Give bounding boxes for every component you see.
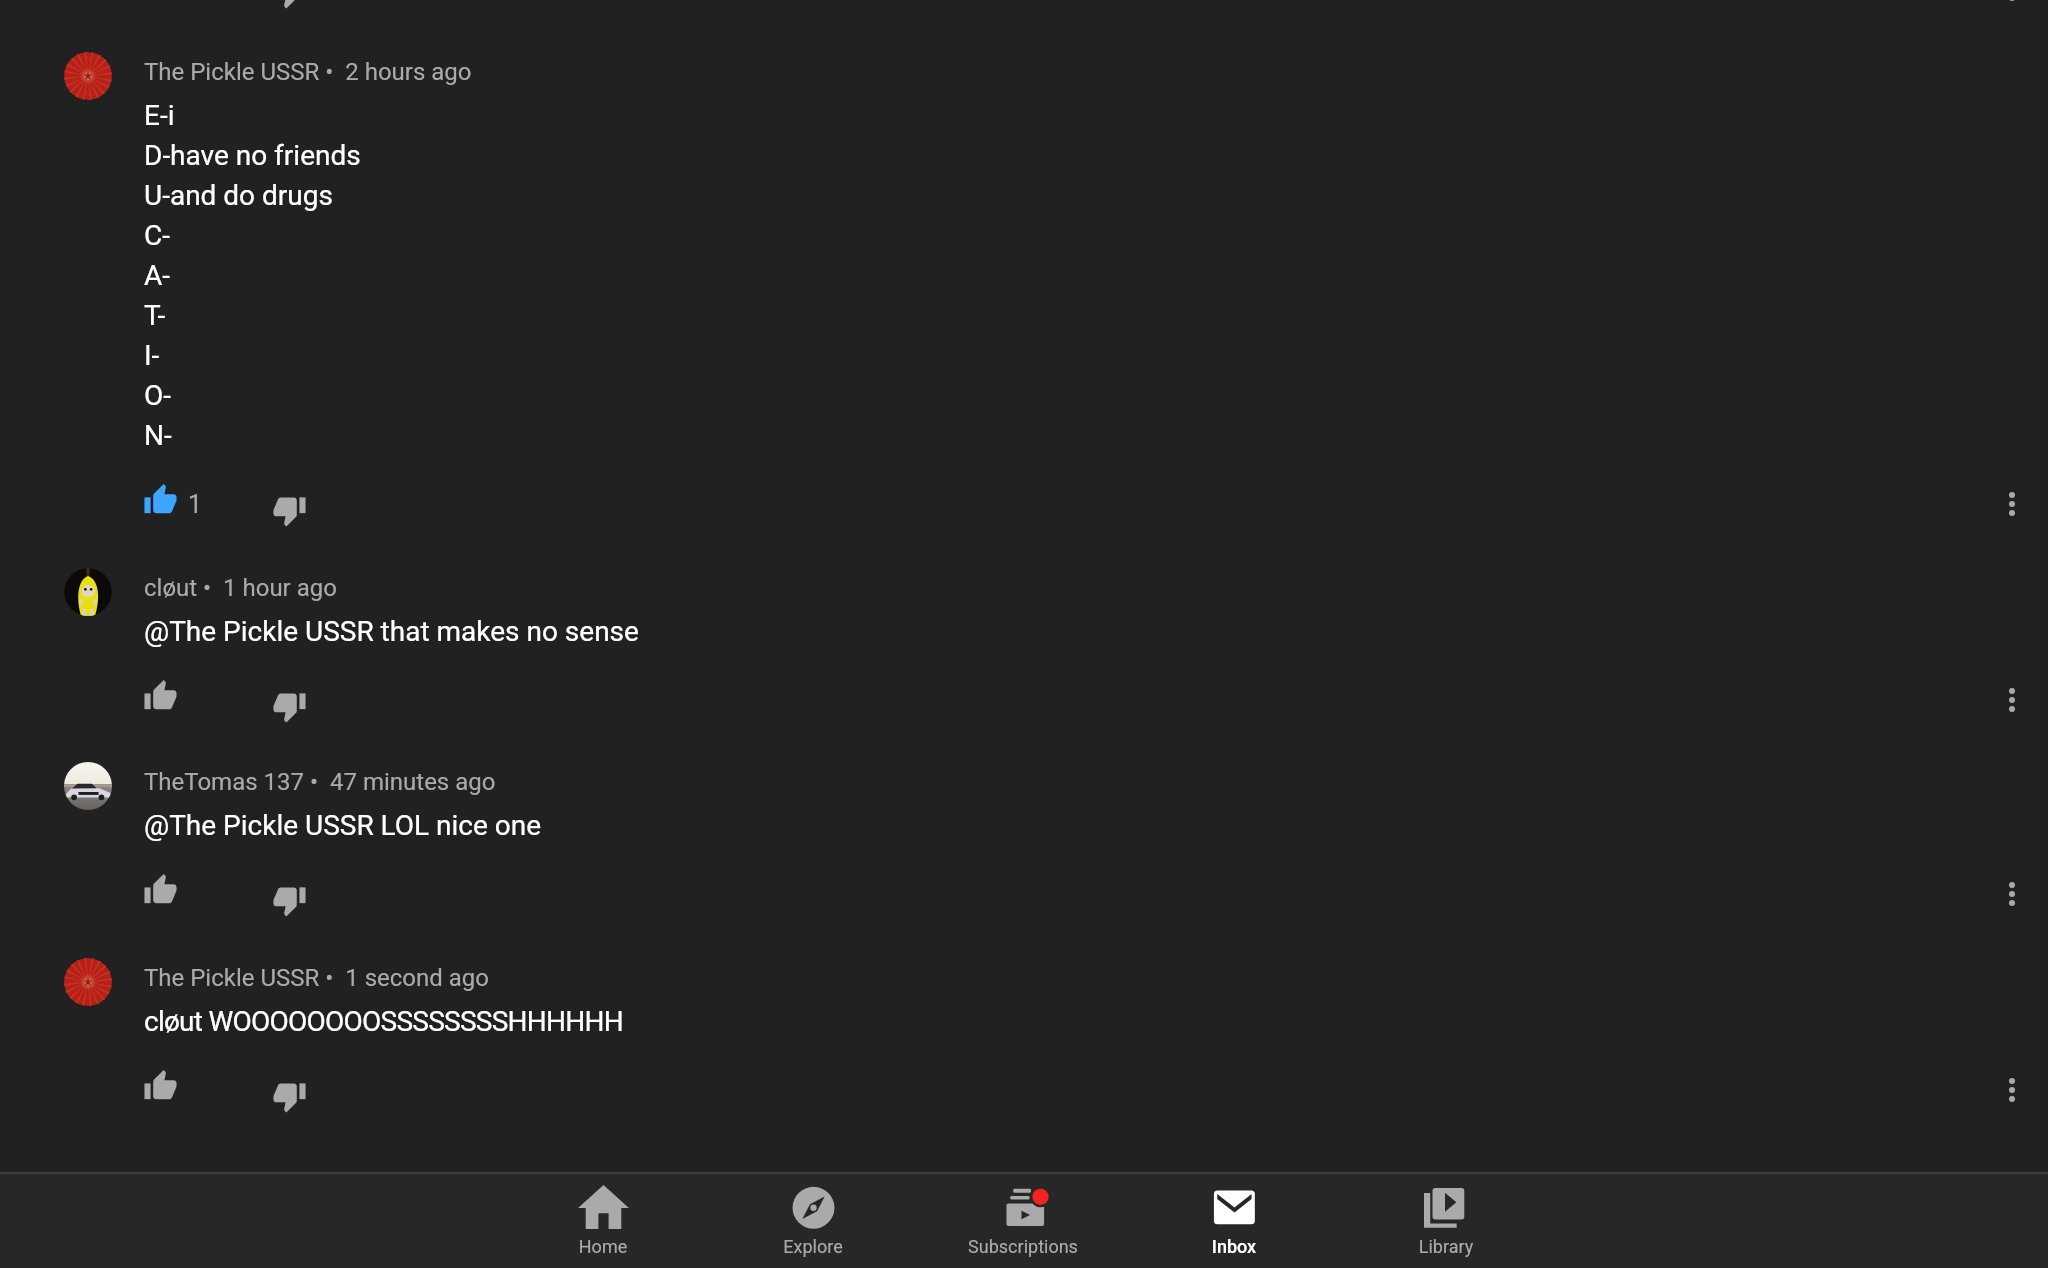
button[interactable] (0, 762, 2048, 924)
staticText: U-and do drugs (144, 179, 333, 212)
button[interactable]: Like (143, 484, 178, 519)
button[interactable]: Explore (708, 1174, 918, 1268)
button[interactable]: Library (1341, 1174, 1551, 1268)
button[interactable] (0, 52, 2048, 534)
staticText: E-i (144, 99, 175, 132)
button[interactable]: More options (1994, 682, 2030, 718)
button[interactable]: Home (498, 1174, 708, 1268)
staticText: Home (498, 1236, 708, 1257)
staticText: O- (144, 379, 172, 412)
button[interactable]: Dislike (272, 1079, 307, 1114)
staticText: I- (144, 339, 160, 372)
button[interactable]: Like (143, 680, 178, 715)
staticText: A- (144, 259, 171, 292)
staticText: TheTomas 137 • 47 minutes ago (144, 768, 496, 796)
button[interactable]: Subscriptions (918, 1174, 1128, 1268)
staticText: Library (1341, 1236, 1551, 1257)
staticText: The Pickle USSR • 1 second ago (144, 964, 490, 992)
staticText: Subscriptions (918, 1236, 1128, 1257)
staticText: cløut WOOOOOOOOSSSSSSSSHHHHHH (144, 1005, 623, 1038)
button[interactable]: Like (143, 1070, 178, 1105)
button[interactable] (0, 568, 2048, 730)
staticText: N- (144, 419, 172, 452)
button[interactable]: Inbox (1129, 1174, 1339, 1268)
staticText: @The Pickle USSR that makes no sense (144, 615, 639, 648)
staticText: Inbox (1129, 1236, 1339, 1257)
button[interactable]: Dislike (272, 689, 307, 724)
staticText: @The Pickle USSR LOL nice one (144, 809, 542, 842)
button[interactable] (0, 958, 2048, 1120)
staticText: T- (144, 299, 166, 332)
staticText: The Pickle USSR • 2 hours ago (144, 58, 472, 86)
button[interactable]: Like (143, 874, 178, 909)
button[interactable]: More options (1994, 486, 2030, 522)
staticText: D-have no friends (144, 139, 361, 172)
button[interactable]: More options (1994, 1072, 2030, 1108)
button[interactable]: Dislike (272, 493, 307, 528)
button[interactable]: More options (1994, 876, 2030, 912)
staticText: Explore (708, 1236, 918, 1257)
staticText: 1 (188, 490, 203, 519)
staticText: cløut • 1 hour ago (144, 574, 337, 602)
button[interactable]: Dislike (272, 883, 307, 918)
button[interactable]: More options (1994, 0, 2030, 7)
staticText: C- (144, 219, 170, 252)
